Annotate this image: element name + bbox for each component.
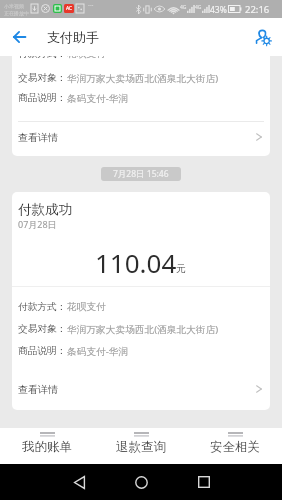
button[interactable]: Back xyxy=(6,18,33,56)
button[interactable]: Recent apps xyxy=(188,464,220,500)
staticText: 7月28日 15:46 xyxy=(113,168,169,180)
staticText: 07月28日 xyxy=(18,218,57,230)
button[interactable]: Back xyxy=(63,464,95,500)
staticText: 华润万家大卖场西北(酒泉北大街店) xyxy=(67,72,219,85)
staticText: 花呗支付 xyxy=(67,301,106,313)
staticText: 付款成功 xyxy=(18,201,72,218)
staticText: 支付助手 xyxy=(47,29,99,45)
staticText: 商品说明： xyxy=(18,92,67,104)
staticText: 安全相关 xyxy=(210,439,260,455)
staticText: 110.04 xyxy=(95,245,177,280)
staticText: 正在播放中 xyxy=(4,10,29,16)
button[interactable]: Home xyxy=(125,464,157,500)
staticText: 22:16 xyxy=(245,3,270,16)
staticText: 43% xyxy=(210,4,227,16)
staticText: 花呗支付 xyxy=(67,56,106,60)
button[interactable]: 查看详情 xyxy=(12,124,270,150)
staticText: 元 xyxy=(176,262,186,275)
staticText: 条码支付-华润 xyxy=(67,92,129,105)
button[interactable]: Customer service xyxy=(249,18,277,56)
staticText: 条码支付-华润 xyxy=(67,345,129,358)
staticText: 我的账单 xyxy=(22,439,72,455)
staticText: 华润万家大卖场西北(酒泉北大街店) xyxy=(67,323,219,336)
staticText: 商品说明： xyxy=(18,345,67,357)
button[interactable]: 安全相关 xyxy=(188,428,282,464)
button[interactable]: 退款查询 xyxy=(94,428,188,464)
button[interactable]: 我的账单 xyxy=(0,428,94,464)
staticText: 退款查询 xyxy=(116,439,166,455)
staticText: 交易对象： xyxy=(18,72,67,84)
staticText: 付款方式： xyxy=(18,301,67,313)
button[interactable]: 查看详情 xyxy=(12,376,270,402)
staticText: 交易对象： xyxy=(18,323,67,335)
staticText: 查看详情 xyxy=(18,383,58,396)
staticText: 付款方式： xyxy=(18,56,67,60)
staticText: ··· xyxy=(88,1,94,11)
staticText: 4G xyxy=(180,4,187,11)
staticText: 小米视频 xyxy=(4,3,24,9)
staticText: 4G xyxy=(195,4,202,11)
staticText: AC xyxy=(66,5,73,12)
staticText: 查看详情 xyxy=(18,131,58,144)
